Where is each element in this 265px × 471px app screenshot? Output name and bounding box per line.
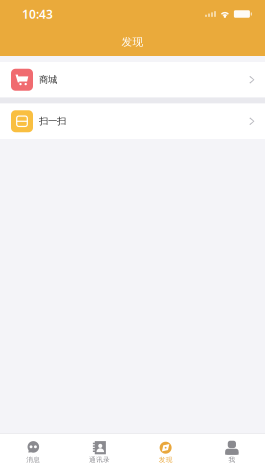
staticText: 我	[228, 456, 235, 464]
staticText: 消息	[26, 456, 40, 464]
staticText: 通讯录	[89, 456, 110, 464]
button[interactable]: 发现	[132, 433, 199, 471]
button[interactable]: 我	[199, 433, 265, 471]
button[interactable]: 消息	[0, 433, 66, 471]
staticText: 发现	[159, 456, 173, 464]
button[interactable]: 商城	[0, 62, 265, 97]
button[interactable]: 扫一扫	[0, 103, 265, 139]
button[interactable]: 通讯录	[66, 433, 132, 471]
staticText: 扫一扫	[39, 115, 66, 127]
staticText: 商城	[39, 74, 57, 85]
staticText: 发现	[121, 35, 143, 48]
staticText: 10:43	[22, 6, 53, 22]
